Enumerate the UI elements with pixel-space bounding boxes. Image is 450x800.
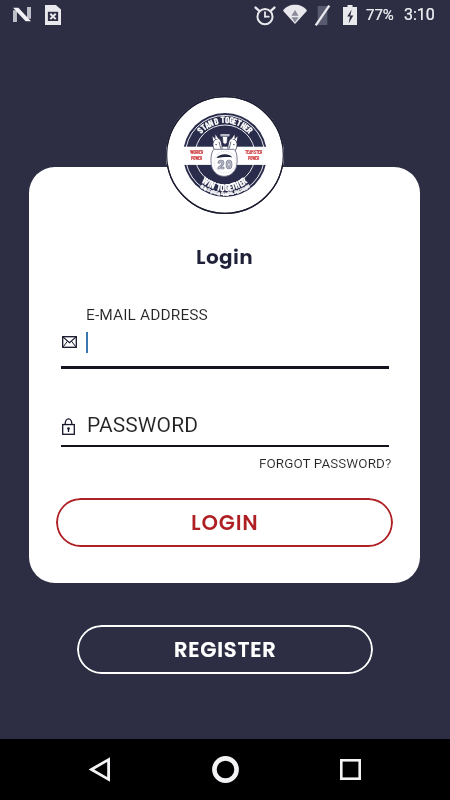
button[interactable]: REGISTER: [77, 625, 373, 674]
staticText: PASSWORD: [87, 413, 199, 438]
button[interactable]: FORGOT PASSWORD?: [259, 456, 392, 472]
staticText: 77%: [366, 6, 394, 24]
staticText: Login: [196, 243, 254, 271]
staticText: LOGIN: [191, 508, 259, 537]
staticText: E-MAIL ADDRESS: [86, 306, 208, 324]
button[interactable]: LOGIN: [56, 498, 393, 547]
staticText: 3:10: [404, 5, 435, 24]
button[interactable]: Recent apps: [328, 739, 372, 800]
button[interactable]: Back: [78, 739, 122, 800]
staticText: REGISTER: [174, 635, 277, 664]
staticText: FORGOT PASSWORD?: [259, 456, 392, 472]
button[interactable]: Home: [203, 739, 247, 800]
